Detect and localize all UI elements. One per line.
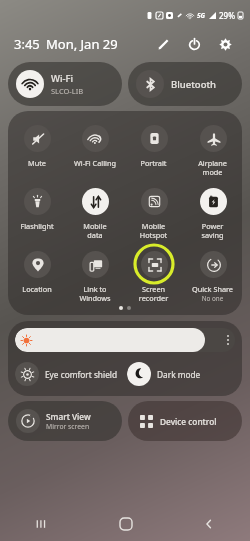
button[interactable]: Location: [8, 244, 66, 296]
button[interactable]: Wi-Fi: [8, 62, 122, 106]
staticText: Mirror screen: [46, 422, 90, 431]
staticText: No one: [183, 294, 242, 303]
staticText: Link to Windows: [66, 284, 124, 303]
staticText: 29%: [219, 10, 235, 21]
staticText: Power saving: [183, 221, 242, 240]
button[interactable]: Power saving: [183, 181, 242, 242]
button[interactable]: Screen recorder: [124, 244, 183, 305]
button[interactable]: Back: [167, 507, 250, 541]
staticText: Eye comfort shield: [45, 369, 118, 380]
staticText: 5G: [197, 11, 206, 20]
staticText: Mobile data: [66, 221, 124, 240]
staticText: Dark mode: [157, 369, 201, 380]
button[interactable]: Smart View: [8, 401, 122, 441]
button[interactable]: Flashlight: [8, 181, 66, 233]
staticText: Quick Share: [183, 284, 242, 294]
staticText: Airplane mode: [183, 158, 242, 177]
staticText: Portrait: [124, 158, 183, 168]
staticText: Wi-Fi Calling: [66, 158, 124, 168]
button[interactable]: Wi-Fi Calling: [66, 118, 124, 170]
staticText: SLCO-LIB: [51, 86, 84, 96]
button[interactable]: Bluetooth: [128, 62, 242, 106]
staticText: Smart View: [46, 411, 91, 422]
button[interactable]: Power: [183, 33, 205, 55]
button[interactable]: Link to Windows: [66, 244, 124, 305]
button[interactable]: Edit: [152, 33, 174, 55]
button[interactable]: Mobile Hotspot: [124, 181, 183, 242]
staticText: Wi-Fi: [51, 72, 74, 85]
button[interactable]: Portrait: [124, 118, 183, 170]
button[interactable]: Mute: [8, 118, 66, 170]
staticText: 3:45: [14, 35, 40, 53]
button[interactable]: Eye comfort shield: [15, 359, 123, 389]
staticText: Bluetooth: [171, 78, 217, 91]
staticText: Location: [8, 284, 66, 294]
button[interactable]: Recents: [0, 507, 84, 541]
staticText: Device control: [160, 416, 217, 427]
button[interactable]: Quick Share: [183, 244, 242, 305]
staticText: Mobile Hotspot: [124, 221, 183, 240]
staticText: Screen recorder: [124, 284, 183, 303]
button[interactable]: [15, 328, 235, 352]
button[interactable]: Home: [84, 507, 167, 541]
button[interactable]: Airplane mode: [183, 118, 242, 179]
staticText: Flashlight: [8, 221, 66, 231]
button[interactable]: Settings: [214, 33, 236, 55]
staticText: Mute: [8, 158, 66, 168]
button[interactable]: Device control: [128, 401, 242, 441]
button[interactable]: Dark mode: [127, 359, 235, 389]
staticText: Mon, Jan 29: [46, 35, 118, 53]
button[interactable]: Mobile data: [66, 181, 124, 242]
